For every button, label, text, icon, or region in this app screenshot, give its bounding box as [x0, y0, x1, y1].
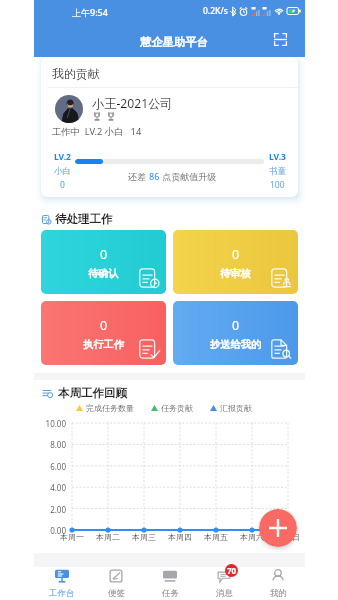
staticText: 2.00: [34, 504, 66, 515]
button[interactable]: 0: [173, 301, 298, 365]
staticText: 本周工作回顾: [58, 386, 127, 400]
staticText: 0: [100, 317, 108, 334]
staticText: 我的贡献: [52, 66, 100, 81]
staticText: 0: [60, 179, 65, 191]
button[interactable]: 我的: [251, 567, 305, 600]
button[interactable]: 0: [41, 301, 166, 365]
staticText: 0: [232, 317, 240, 334]
staticText: 本周五: [198, 532, 234, 542]
staticText: 0: [232, 246, 240, 263]
button[interactable]: 0: [41, 230, 166, 294]
staticText: 便签: [108, 588, 125, 599]
staticText: 本周三: [126, 532, 162, 542]
staticText: 待确认: [88, 267, 119, 280]
button[interactable]: Scan: [271, 30, 290, 49]
staticText: 完成任务数量: [86, 403, 134, 413]
staticText: 工作中 LV.2 小白 14: [52, 125, 142, 138]
staticText: 工作台: [49, 588, 75, 599]
staticText: 慧企星助平台: [140, 35, 208, 49]
staticText: 任务: [162, 588, 179, 599]
staticText: 86: [149, 170, 160, 182]
staticText: 100: [270, 179, 285, 191]
staticText: 本周二: [90, 532, 126, 542]
staticText: 0.2K/s: [203, 5, 228, 17]
staticText: LV.3: [269, 151, 286, 163]
staticText: 待处理工作: [55, 212, 113, 226]
staticText: 本周日: [270, 532, 306, 542]
button[interactable]: 工作台: [34, 567, 89, 600]
staticText: 还差: [128, 170, 149, 182]
staticText: 0: [100, 246, 108, 263]
staticText: 上午9:54: [72, 6, 108, 18]
staticText: 小王-2021公司: [92, 95, 173, 112]
button[interactable]: 我的贡献: [41, 57, 298, 197]
button[interactable]: 任务: [143, 567, 197, 600]
button[interactable]: 便签: [89, 567, 143, 600]
staticText: 本周四: [162, 532, 198, 542]
staticText: 书童: [269, 166, 286, 177]
staticText: 8.00: [34, 439, 66, 450]
staticText: 消息: [216, 588, 233, 599]
staticText: 抄送给我的: [210, 338, 261, 351]
staticText: LV.2: [54, 151, 71, 163]
staticText: 执行工作: [83, 338, 124, 351]
staticText: 汇报贡献: [220, 403, 252, 413]
button[interactable]: 70: [197, 567, 251, 600]
staticText: 我的: [270, 588, 287, 599]
button[interactable]: 0: [173, 230, 298, 294]
staticText: 本周六: [234, 532, 270, 542]
staticText: 任务贡献: [161, 403, 193, 413]
staticText: 70: [227, 565, 237, 576]
staticText: 点贡献值升级: [160, 170, 217, 182]
staticText: 6.00: [34, 461, 66, 472]
staticText: 小白: [54, 166, 71, 177]
staticText: 0.00: [34, 525, 66, 536]
staticText: 4.00: [34, 482, 66, 493]
staticText: 10.00: [34, 418, 66, 429]
staticText: 本周一: [54, 532, 90, 542]
staticText: 待审核: [220, 267, 251, 280]
button[interactable]: Add: [259, 509, 297, 547]
